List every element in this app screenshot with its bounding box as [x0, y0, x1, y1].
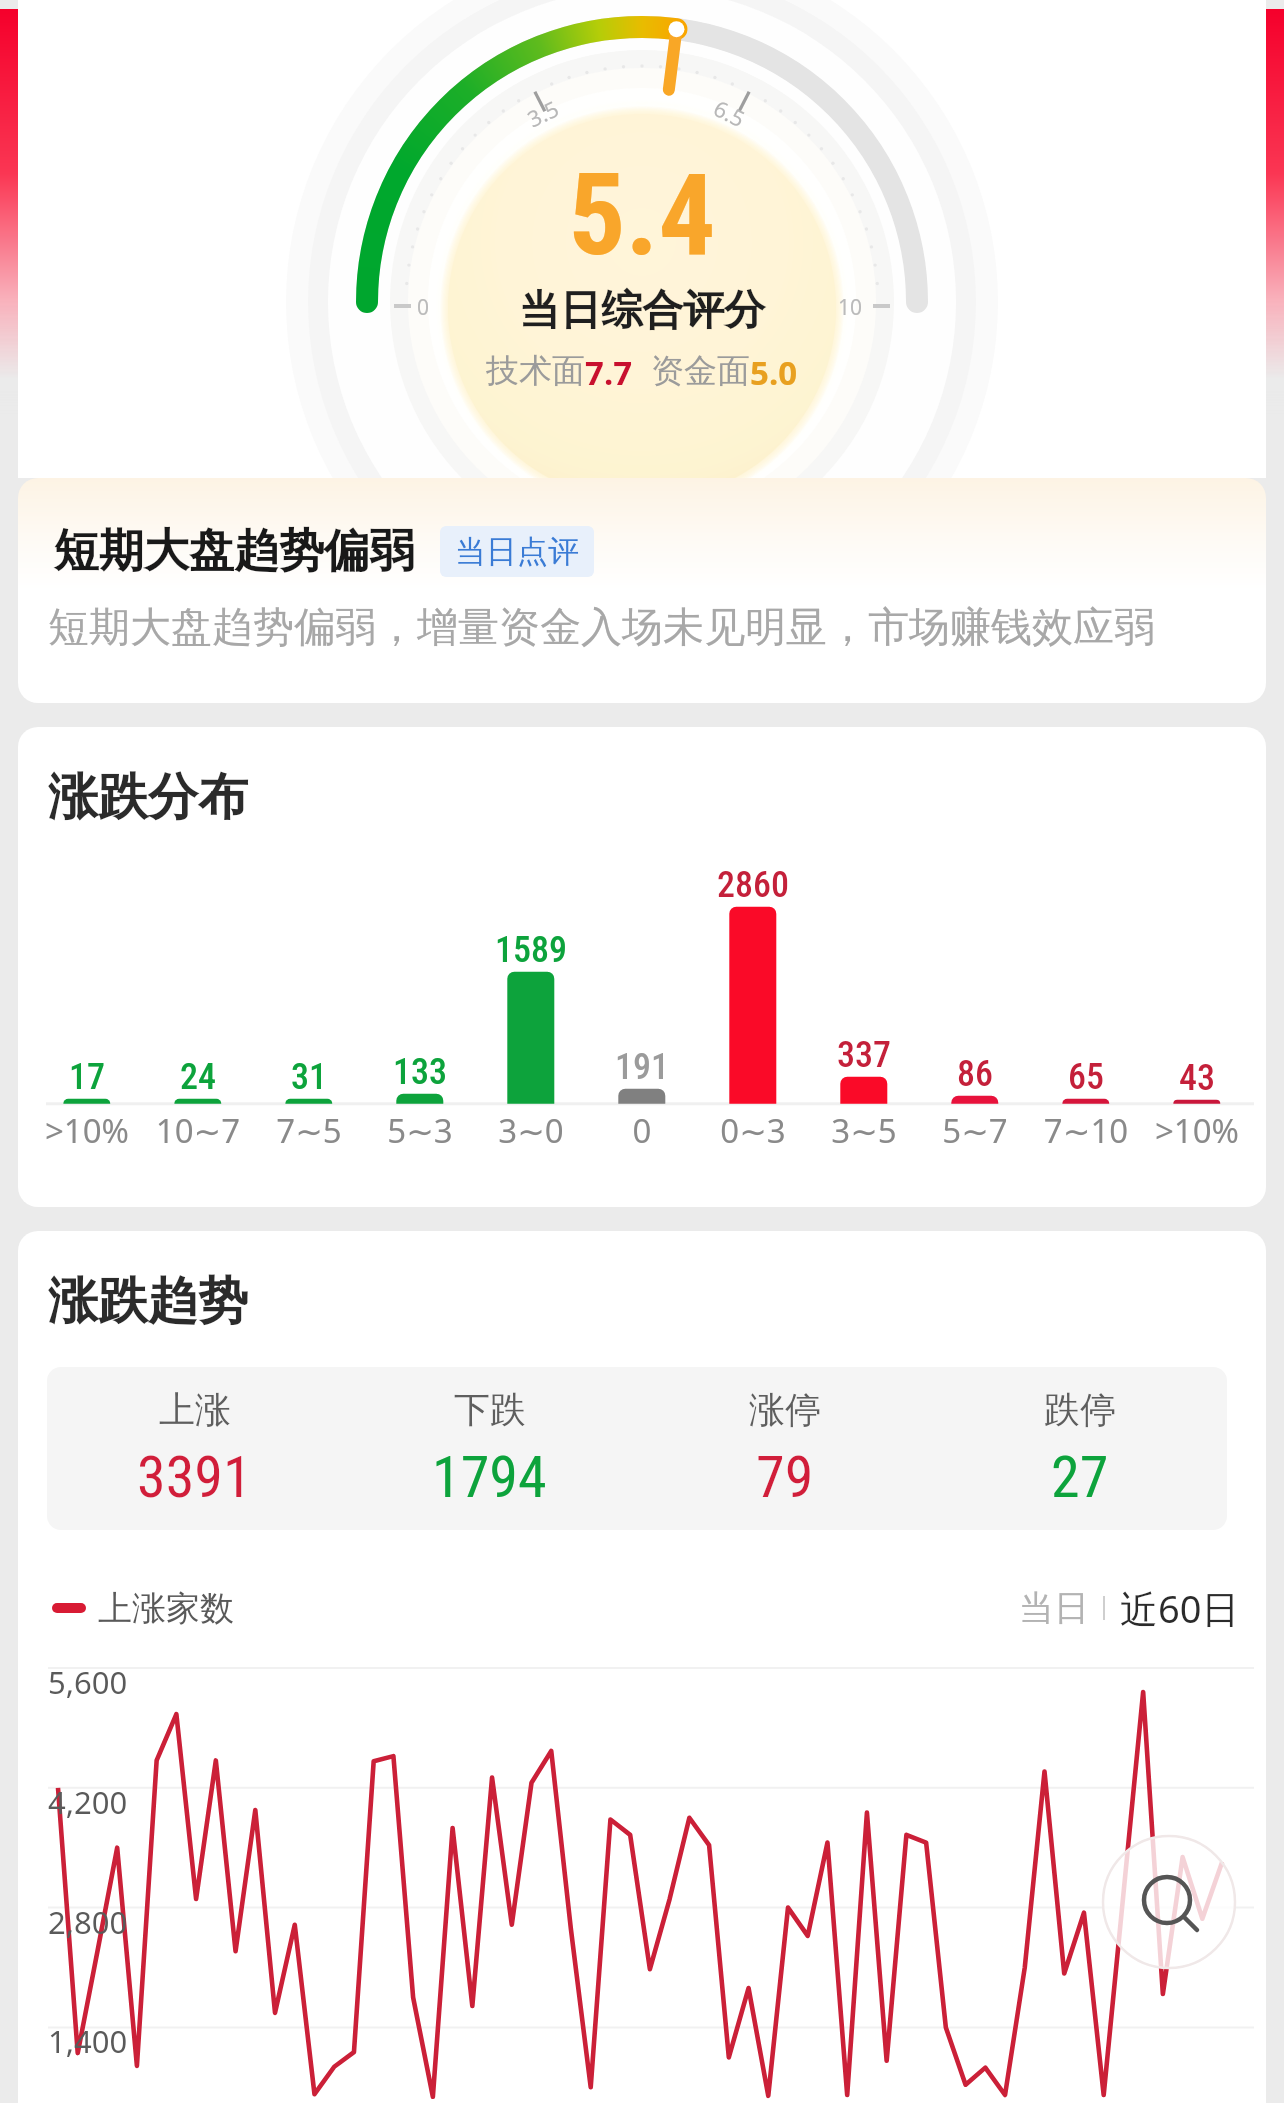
staticText: 上涨	[159, 1387, 231, 1432]
staticText: 79	[756, 1443, 814, 1511]
button[interactable]: 近60日	[1120, 1582, 1240, 1634]
staticText: >10%	[22, 1108, 152, 1153]
staticText: 3∼0	[466, 1108, 596, 1153]
staticText: 5∼7	[910, 1108, 1040, 1153]
staticText: 43	[1137, 1057, 1257, 1099]
staticText: 65	[1026, 1056, 1146, 1098]
button[interactable]: 短期大盘趋势偏弱	[18, 478, 1266, 703]
staticText: 3391	[137, 1443, 252, 1511]
staticText: 短期大盘趋势偏弱，增量资金入场未见明显，市场赚钱效应弱	[48, 602, 1155, 654]
staticText: 2,800	[48, 1901, 128, 1943]
staticText: 跌停	[1044, 1387, 1116, 1432]
staticText: 17	[27, 1056, 147, 1098]
staticText: 3∼5	[799, 1108, 929, 1153]
staticText: 10∼7	[133, 1108, 263, 1153]
staticText: 涨停	[749, 1387, 821, 1432]
staticText: 3.5	[522, 92, 564, 133]
staticText: 0∼3	[688, 1108, 818, 1153]
staticText: 0	[417, 293, 430, 322]
staticText: 涨跌分布	[48, 766, 248, 829]
staticText: 0	[577, 1108, 707, 1153]
button[interactable]: 涨跌趋势	[18, 1231, 1266, 2103]
staticText: 当日综合评分	[0, 285, 1284, 337]
staticText: 191	[582, 1046, 702, 1088]
staticText: 5.0	[750, 350, 798, 395]
staticText: 短期大盘趋势偏弱	[54, 523, 414, 580]
staticText: 当日	[1019, 1586, 1089, 1630]
button[interactable]: 涨停	[637, 1387, 932, 1511]
staticText: 涨跌趋势	[48, 1270, 248, 1333]
staticText: 133	[360, 1051, 480, 1093]
staticText: 7.7	[585, 350, 633, 395]
staticText: 近60日	[1120, 1582, 1240, 1634]
staticText: 7∼10	[1021, 1108, 1151, 1153]
staticText: 1794	[432, 1443, 547, 1511]
button[interactable]: 下跌	[342, 1387, 637, 1511]
staticText: 337	[804, 1034, 924, 1076]
staticText: 7∼5	[244, 1108, 374, 1153]
button[interactable]: 跌停	[932, 1387, 1227, 1511]
staticText: >10%	[1132, 1108, 1262, 1153]
button[interactable]: 当日	[1019, 1586, 1089, 1630]
staticText: 2860	[693, 864, 813, 906]
staticText: 10	[838, 293, 863, 322]
staticText: 4,200	[48, 1781, 128, 1823]
staticText: 技术面	[486, 350, 585, 392]
staticText: 5,600	[48, 1661, 128, 1703]
other: Search	[1140, 1873, 1202, 1935]
staticText: 6.5	[709, 92, 751, 133]
staticText: 1,400	[48, 2020, 128, 2062]
staticText: 资金面	[651, 350, 750, 392]
staticText: 当日点评	[455, 532, 579, 571]
staticText: 86	[915, 1053, 1035, 1095]
staticText: 1589	[471, 929, 591, 971]
button[interactable]: 当日综合评分 5.4	[0, 0, 1284, 478]
staticText: 5∼3	[355, 1108, 485, 1153]
staticText: 31	[249, 1056, 369, 1098]
staticText: 下跌	[454, 1387, 526, 1432]
staticText: 上涨家数	[98, 1587, 234, 1630]
staticText: 24	[138, 1056, 258, 1098]
button[interactable]: 涨跌分布	[18, 727, 1266, 1207]
staticText: 5.4	[0, 149, 1284, 281]
button[interactable]: 上涨	[47, 1387, 342, 1511]
staticText: 27	[1051, 1443, 1109, 1511]
